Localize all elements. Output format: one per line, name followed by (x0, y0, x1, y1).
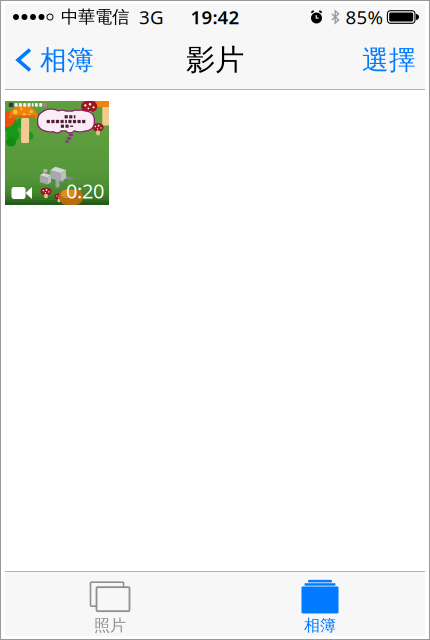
staticText: 中華電信 (61, 6, 129, 28)
button[interactable]: 照片 (5, 569, 215, 638)
button[interactable]: 選擇 (348, 34, 425, 86)
button[interactable]: 0:20 (5, 101, 109, 205)
staticText: 照片 (94, 616, 126, 635)
staticText: 相簿 (304, 616, 336, 635)
staticText: 19:42 (190, 5, 239, 29)
staticText: 影片 (186, 42, 244, 78)
staticText: 相簿 (40, 44, 94, 76)
staticText: 85% (345, 5, 383, 29)
button[interactable]: 相簿 (215, 569, 425, 638)
staticText: 0:20 (66, 177, 104, 204)
staticText: 3G (139, 5, 164, 29)
button[interactable]: 相簿 (5, 34, 104, 86)
staticText: 選擇 (362, 44, 416, 76)
